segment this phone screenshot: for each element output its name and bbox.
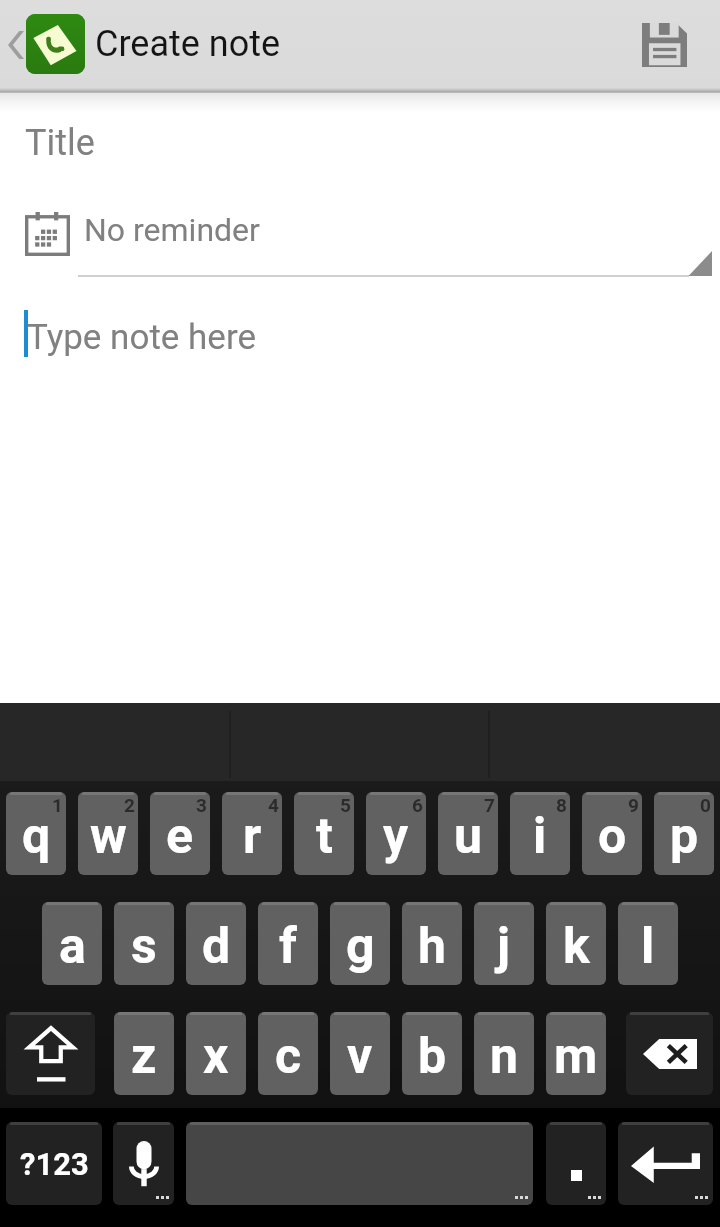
staticText: 4 bbox=[268, 794, 279, 816]
button[interactable]: w bbox=[78, 792, 138, 875]
button[interactable]: s bbox=[114, 902, 174, 985]
button[interactable]: v bbox=[330, 1012, 390, 1095]
button[interactable]: p bbox=[654, 792, 714, 875]
button[interactable]: e bbox=[150, 792, 210, 875]
staticText: 7 bbox=[484, 794, 495, 816]
button[interactable]: Period bbox=[546, 1122, 606, 1205]
button[interactable]: m bbox=[546, 1012, 606, 1095]
button[interactable]: Enter bbox=[618, 1122, 713, 1205]
button[interactable]: c bbox=[258, 1012, 318, 1095]
staticText: n bbox=[490, 1027, 519, 1086]
button[interactable]: i bbox=[510, 792, 570, 875]
button[interactable]: Shift bbox=[6, 1012, 95, 1095]
button[interactable]: u bbox=[438, 792, 498, 875]
button[interactable]: k bbox=[546, 902, 606, 985]
button[interactable]: Type note here bbox=[0, 300, 720, 370]
staticText: ?123 bbox=[20, 1146, 89, 1182]
staticText: Type note here bbox=[27, 317, 257, 358]
button[interactable]: f bbox=[258, 902, 318, 985]
button[interactable]: l bbox=[618, 902, 678, 985]
staticText: 5 bbox=[340, 794, 351, 816]
staticText: a bbox=[59, 917, 86, 976]
button[interactable]: Space bbox=[186, 1122, 533, 1205]
staticText: s bbox=[131, 917, 157, 976]
staticText: z bbox=[131, 1027, 157, 1086]
button[interactable]: b bbox=[402, 1012, 462, 1095]
staticText: 1 bbox=[52, 794, 63, 816]
staticText: 8 bbox=[556, 794, 567, 816]
button[interactable]: r bbox=[222, 792, 282, 875]
staticText: o bbox=[598, 807, 627, 866]
staticText: k bbox=[563, 917, 590, 976]
button[interactable]: x bbox=[186, 1012, 246, 1095]
staticText: 9 bbox=[628, 794, 639, 816]
staticText: g bbox=[346, 917, 375, 976]
staticText: l bbox=[641, 917, 655, 976]
button[interactable]: h bbox=[402, 902, 462, 985]
button[interactable]: y bbox=[366, 792, 426, 875]
button[interactable]: Navigate up bbox=[0, 0, 281, 93]
staticText: q bbox=[22, 807, 51, 866]
staticText: Create note bbox=[95, 23, 281, 65]
button[interactable]: No reminder bbox=[0, 190, 720, 278]
button[interactable]: z bbox=[114, 1012, 174, 1095]
button[interactable]: ?123 bbox=[6, 1122, 102, 1205]
staticText: f bbox=[279, 917, 297, 976]
staticText: r bbox=[243, 807, 262, 866]
staticText: e bbox=[166, 807, 194, 866]
button[interactable]: Backspace bbox=[626, 1012, 713, 1095]
staticText: i bbox=[533, 807, 547, 866]
staticText: b bbox=[418, 1027, 447, 1086]
staticText: 2 bbox=[124, 794, 135, 816]
button[interactable]: Voice input bbox=[113, 1122, 174, 1205]
staticText: t bbox=[316, 807, 333, 866]
button[interactable]: a bbox=[42, 902, 102, 985]
button[interactable]: t bbox=[294, 792, 354, 875]
button[interactable]: Save bbox=[630, 0, 720, 93]
staticText: w bbox=[90, 807, 127, 866]
button[interactable]: j bbox=[474, 902, 534, 985]
staticText: No reminder bbox=[84, 211, 260, 249]
staticText: c bbox=[275, 1027, 302, 1086]
staticText: h bbox=[418, 917, 447, 976]
staticText: v bbox=[347, 1027, 373, 1086]
button[interactable]: o bbox=[582, 792, 642, 875]
staticText: p bbox=[670, 807, 699, 866]
staticText: d bbox=[202, 917, 231, 976]
staticText: 3 bbox=[196, 794, 207, 816]
staticText: y bbox=[383, 807, 409, 866]
staticText: x bbox=[203, 1027, 229, 1086]
button[interactable]: g bbox=[330, 902, 390, 985]
staticText: 0 bbox=[700, 794, 711, 816]
staticText: m bbox=[554, 1027, 598, 1086]
staticText: j bbox=[497, 917, 511, 976]
button[interactable]: n bbox=[474, 1012, 534, 1095]
button[interactable]: d bbox=[186, 902, 246, 985]
staticText: Title bbox=[25, 122, 95, 164]
button[interactable]: q bbox=[6, 792, 66, 875]
staticText: 6 bbox=[412, 794, 423, 816]
staticText: u bbox=[454, 807, 483, 866]
